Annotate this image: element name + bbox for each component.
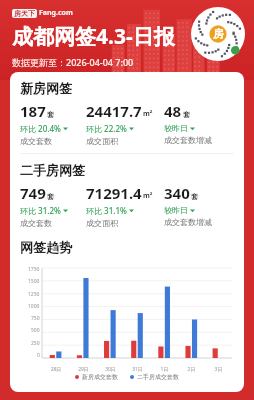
staticText: 749 (20, 183, 46, 203)
staticText: 套 (47, 110, 54, 119)
staticText: 较昨日 (164, 123, 188, 133)
staticText: 1500 (28, 278, 40, 285)
staticText: 750 (31, 315, 40, 322)
staticText: 500 (31, 327, 40, 334)
staticText: 成都网签4.3-日报 (12, 22, 175, 51)
staticText: 数据更新至：2026-04-04 7:00 (12, 56, 134, 68)
staticText: 1750 (28, 266, 40, 273)
staticText: m² (143, 191, 153, 201)
button[interactable]: 24417.7 (86, 101, 164, 146)
button[interactable]: 71291.4 (86, 183, 164, 228)
staticText: 31日 (124, 366, 151, 373)
staticText: 房 (213, 27, 224, 41)
staticText: Fang.com (39, 8, 73, 18)
staticText: 较昨日 (164, 205, 188, 215)
button[interactable]: 房天下 Fang.com (12, 8, 73, 18)
button[interactable]: 340 (164, 183, 234, 227)
button[interactable]: 二手房成交套数 (130, 373, 179, 381)
staticText: 成交套数 (20, 136, 52, 146)
staticText: 0 (37, 352, 40, 359)
staticText: 29日 (70, 366, 97, 373)
staticText: 套 (191, 192, 198, 201)
staticText: 250 (31, 340, 40, 347)
staticText: 1000 (28, 303, 40, 310)
staticText: 环比 31.1% (86, 205, 127, 216)
staticText: 环比 31.2% (20, 205, 61, 216)
button[interactable]: 新房成交套数 (75, 373, 118, 381)
staticText: 340 (164, 183, 190, 203)
staticText: 网签趋势 (20, 239, 72, 255)
staticText: 1250 (28, 291, 40, 298)
button[interactable]: 1750 (20, 260, 234, 373)
button[interactable]: 187 (20, 101, 86, 146)
staticText: 2日 (178, 366, 205, 373)
staticText: 48 (164, 101, 182, 121)
staticText: 套 (47, 192, 54, 201)
staticText: 3日 (205, 366, 232, 373)
staticText: 187 (20, 101, 46, 121)
staticText: m² (143, 109, 153, 119)
staticText: 成交套数增减 (164, 135, 212, 145)
staticText: 成交面积 (86, 136, 118, 146)
staticText: 成交套数 (20, 218, 52, 228)
staticText: 新房网签 (20, 80, 72, 96)
staticText: 30日 (97, 366, 124, 373)
staticText: 套 (183, 110, 190, 119)
button[interactable]: 749 (20, 183, 86, 228)
staticText: 1日 (151, 366, 178, 373)
staticText: 房天下 (14, 9, 35, 18)
button[interactable]: 房天下印章 (191, 7, 245, 61)
staticText: 二手房网签 (20, 162, 85, 178)
button[interactable]: 48 (164, 101, 234, 145)
staticText: 新房成交套数 (82, 373, 118, 381)
staticText: 成交面积 (86, 218, 118, 228)
staticText: 二手房成交套数 (137, 373, 179, 381)
staticText: 成交套数增减 (164, 217, 212, 227)
staticText: 环比 20.4% (20, 123, 61, 134)
staticText: 71291.4 (86, 183, 142, 203)
staticText: 28日 (42, 366, 70, 373)
staticText: 24417.7 (86, 101, 142, 121)
staticText: 环比 22.2% (86, 123, 127, 134)
